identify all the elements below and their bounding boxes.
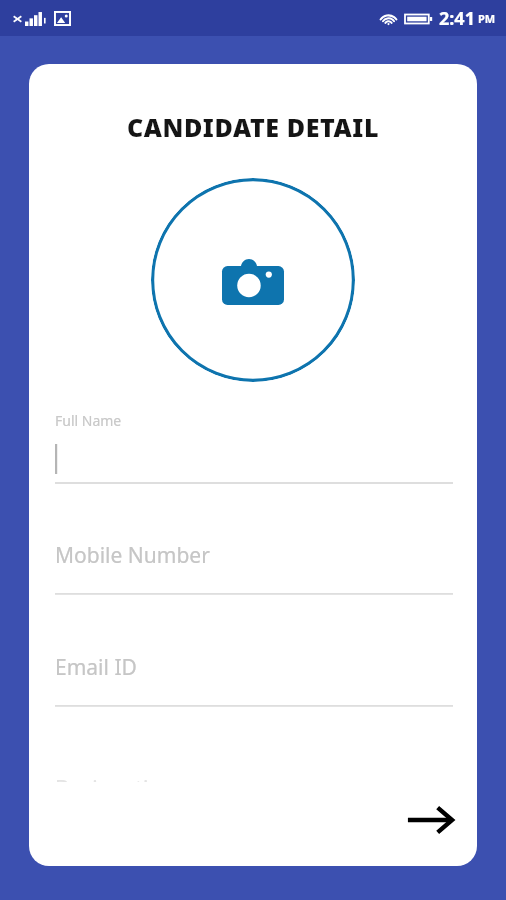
staticText: Full Name — [55, 411, 122, 430]
button[interactable]: Next — [400, 790, 460, 850]
staticText: PM — [478, 11, 496, 26]
button[interactable] — [29, 436, 477, 492]
staticText: Designation — [55, 774, 175, 782]
button[interactable]: Email ID — [29, 649, 477, 715]
staticText: 2:41 — [439, 6, 475, 31]
staticText: Mobile Number — [55, 541, 210, 570]
staticText: Email ID — [55, 653, 137, 682]
button[interactable]: Add candidate photo — [151, 178, 355, 382]
staticText: CANDIDATE DETAIL — [29, 110, 477, 144]
button[interactable]: Mobile Number — [29, 537, 477, 603]
button[interactable]: Designation — [55, 774, 285, 782]
